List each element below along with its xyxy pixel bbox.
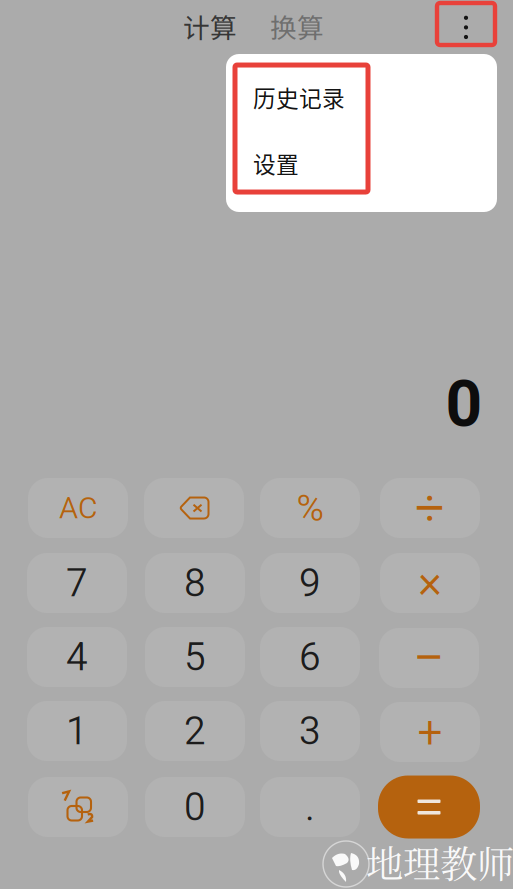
button[interactable]: 5 <box>145 627 245 687</box>
staticText: . <box>305 784 315 830</box>
button[interactable]: 设置 <box>253 143 383 183</box>
button[interactable]: + <box>380 702 480 762</box>
staticText: 历史记录 <box>253 81 345 113</box>
staticText: 9 <box>299 560 321 606</box>
button[interactable]: Equals <box>378 775 480 838</box>
button[interactable]: ÷ <box>380 478 480 538</box>
button[interactable]: 0 <box>145 777 245 837</box>
button[interactable]: AC <box>28 478 128 538</box>
button[interactable]: Scientific mode <box>28 777 128 837</box>
staticText: 地理教师 <box>366 835 513 889</box>
button[interactable]: 9 <box>260 553 360 613</box>
staticText: 计算 <box>183 7 237 45</box>
button[interactable]: 2 <box>145 701 245 761</box>
button[interactable]: 7 <box>27 553 127 613</box>
button[interactable]: 计算 <box>172 3 248 49</box>
button[interactable]: Backspace <box>144 478 244 538</box>
button[interactable]: 1 <box>27 701 127 761</box>
staticText: AC <box>59 490 97 526</box>
staticText: 8 <box>184 560 206 606</box>
staticText: 2 <box>184 708 206 754</box>
staticText: 0 <box>445 366 482 441</box>
button[interactable]: 8 <box>145 553 245 613</box>
button[interactable]: % <box>260 478 360 538</box>
button[interactable]: 历史记录 <box>253 77 383 117</box>
staticText: 4 <box>66 634 88 680</box>
staticText: 3 <box>299 708 321 754</box>
staticText: 换算 <box>270 7 324 45</box>
staticText: 6 <box>299 634 321 680</box>
button[interactable]: 3 <box>260 701 360 761</box>
staticText: 设置 <box>253 147 299 179</box>
button[interactable]: − <box>379 628 479 688</box>
staticText: 7 <box>66 560 88 606</box>
staticText: 1 <box>66 708 88 754</box>
staticText: 0 <box>184 784 206 830</box>
button[interactable]: 4 <box>27 627 127 687</box>
staticText: ÷ <box>415 477 445 538</box>
button[interactable]: More options <box>437 3 495 45</box>
button[interactable]: 换算 <box>259 3 335 49</box>
button[interactable]: 6 <box>260 627 360 687</box>
button[interactable]: . <box>260 777 360 837</box>
staticText: − <box>413 625 445 691</box>
staticText: + <box>417 706 442 758</box>
staticText: × <box>418 556 442 609</box>
staticText: % <box>296 486 323 530</box>
button[interactable]: × <box>380 553 480 613</box>
staticText: 5 <box>184 634 206 680</box>
